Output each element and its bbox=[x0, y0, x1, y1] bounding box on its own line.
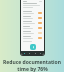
button[interactable]: Tab 1 bbox=[23, 52, 26, 55]
staticText: Reduce documentation bbox=[3, 59, 61, 66]
button[interactable] bbox=[23, 21, 42, 24]
button[interactable]: Tab 2 bbox=[28, 52, 31, 55]
button[interactable]: Record note bbox=[21, 0, 44, 55]
button[interactable]: Tab 4 bbox=[39, 52, 42, 55]
button[interactable]: Record note bbox=[30, 44, 36, 50]
button[interactable]: Tab 3 bbox=[34, 52, 37, 55]
staticText: time by 76% bbox=[17, 66, 48, 72]
button[interactable] bbox=[23, 11, 42, 14]
button[interactable] bbox=[23, 31, 42, 34]
button[interactable] bbox=[23, 16, 42, 19]
button[interactable] bbox=[23, 36, 42, 39]
button[interactable] bbox=[23, 26, 42, 29]
